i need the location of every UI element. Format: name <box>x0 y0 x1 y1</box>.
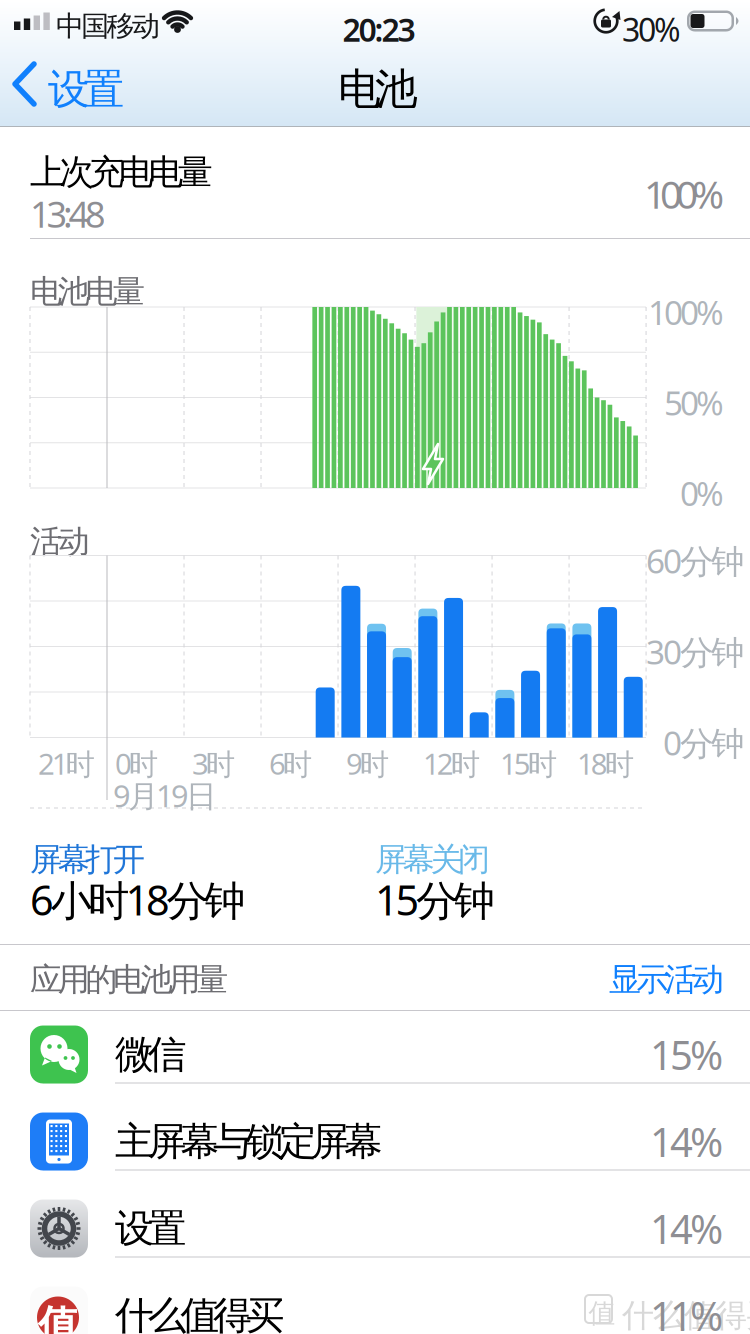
staticText: 14% <box>650 1115 723 1168</box>
staticText: 50% <box>664 380 724 425</box>
staticText: 设置 <box>48 64 124 115</box>
staticText: 微信 <box>115 1031 187 1078</box>
button[interactable]: 主屏幕与锁定屏幕 <box>0 1098 750 1185</box>
staticText: 100% <box>644 168 724 219</box>
staticText: 6时 <box>269 744 312 783</box>
staticText: 值 <box>588 1297 615 1330</box>
staticText: 21时 <box>38 744 95 783</box>
staticText: 什么值得买 <box>622 1296 750 1334</box>
staticText: 值 <box>38 1300 78 1334</box>
staticText: 屏幕关闭 <box>375 840 490 879</box>
staticText: 11% <box>650 1289 723 1334</box>
staticText: 活动 <box>30 522 90 561</box>
staticText: 电池 <box>338 63 418 115</box>
staticText: 3时 <box>192 744 235 783</box>
staticText: 0时 <box>115 744 158 783</box>
button[interactable]: 设置 <box>0 1185 750 1272</box>
staticText: 上次充电电量 <box>30 151 213 194</box>
staticText: 20:23 <box>342 8 415 50</box>
staticText: 30分钟 <box>646 629 744 674</box>
staticText: 9月19日 <box>113 775 217 816</box>
staticText: 主屏幕与锁定屏幕 <box>115 1118 383 1165</box>
button[interactable]: 设置 <box>0 0 160 126</box>
staticText: 60分钟 <box>646 538 744 583</box>
staticText: 30% <box>622 8 681 50</box>
staticText: 15% <box>650 1028 723 1081</box>
staticText: 显示活动 <box>609 960 724 999</box>
staticText: 电池电量 <box>30 272 145 311</box>
staticText: 100% <box>648 290 724 334</box>
staticText: 屏幕打开 <box>30 840 145 879</box>
staticText: 18时 <box>577 744 634 783</box>
staticText: 6小时18分钟 <box>30 872 245 927</box>
staticText: 应用的电池用量 <box>30 960 228 999</box>
staticText: 什么值得买 <box>115 1292 285 1334</box>
staticText: 14% <box>650 1202 723 1255</box>
staticText: 15分钟 <box>375 872 494 927</box>
staticText: 12时 <box>423 744 480 783</box>
staticText: 设置 <box>115 1205 187 1252</box>
staticText: 9时 <box>346 744 389 783</box>
button[interactable]: 值 <box>0 1272 750 1334</box>
button[interactable]: 微信 <box>0 1011 750 1098</box>
staticText: 13:48 <box>30 190 106 238</box>
staticText: 0% <box>680 471 724 515</box>
button[interactable]: 显示活动 <box>0 960 724 999</box>
staticText: 15时 <box>500 744 557 783</box>
staticText: 0分钟 <box>663 720 744 765</box>
staticText: 中国移动 <box>56 9 160 43</box>
